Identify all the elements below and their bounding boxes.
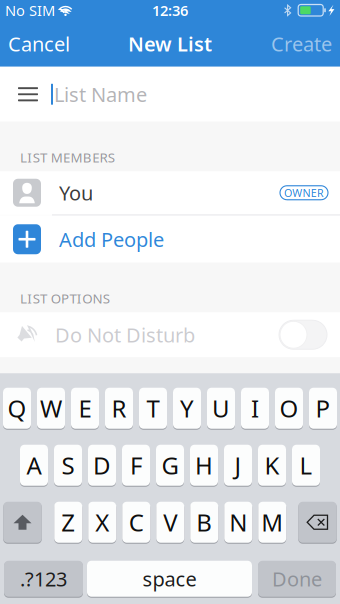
staticText: F [130, 449, 142, 481]
staticText: Done [272, 565, 322, 592]
button[interactable]: Shift [3, 501, 42, 543]
staticText: N [229, 506, 247, 538]
staticText: 12:36 [152, 0, 188, 20]
staticText: H [195, 449, 213, 481]
button[interactable]: J [224, 444, 252, 486]
button[interactable]: E [71, 387, 99, 429]
staticText: K [264, 449, 279, 481]
button[interactable]: G [156, 444, 184, 486]
button[interactable]: Create [263, 21, 340, 67]
button[interactable]: O [275, 387, 303, 429]
staticText: U [212, 392, 230, 424]
staticText: You [59, 179, 93, 206]
staticText: space [142, 565, 196, 592]
staticText: List Name [54, 81, 147, 108]
staticText: W [40, 392, 62, 424]
button[interactable]: U [207, 387, 235, 429]
button[interactable]: H [190, 444, 218, 486]
staticText: Q [7, 392, 26, 424]
staticText: OWNER [284, 186, 324, 200]
button[interactable]: X [88, 501, 116, 543]
staticText: B [196, 506, 212, 538]
staticText: X [95, 506, 109, 538]
button[interactable]: Q [3, 387, 31, 429]
staticText: T [146, 392, 159, 424]
staticText: LIST MEMBERS [20, 148, 115, 166]
staticText: M [261, 506, 283, 538]
staticText: V [163, 506, 177, 538]
button[interactable]: T [139, 387, 167, 429]
staticText: J [234, 449, 241, 481]
staticText: Do Not Disturb [55, 321, 195, 348]
button[interactable]: B [190, 501, 218, 543]
button[interactable]: Y [173, 387, 201, 429]
staticText: C [129, 506, 144, 538]
staticText: Z [61, 506, 75, 538]
staticText: Y [180, 392, 194, 424]
button[interactable]: You [0, 171, 340, 214]
staticText: E [78, 392, 91, 424]
staticText: A [26, 449, 41, 481]
staticText: R [111, 392, 126, 424]
staticText: O [279, 392, 298, 424]
staticText: Add People [59, 226, 164, 253]
button[interactable]: D [88, 444, 116, 486]
button[interactable]: L [292, 444, 320, 486]
staticText: Cancel [8, 30, 70, 57]
button[interactable]: R [105, 387, 133, 429]
button[interactable]: S [54, 444, 82, 486]
staticText: D [93, 449, 111, 481]
staticText: LIST OPTIONS [20, 289, 110, 307]
button[interactable]: N [224, 501, 252, 543]
button[interactable]: .?123 [4, 560, 83, 597]
button[interactable]: space [87, 560, 252, 597]
button[interactable]: W [37, 387, 65, 429]
staticText: No SIM [5, 0, 55, 20]
button[interactable]: I [241, 387, 269, 429]
staticText: .?123 [20, 565, 67, 592]
button[interactable]: P [309, 387, 337, 429]
staticText: New List [128, 30, 212, 57]
button[interactable]: F [122, 444, 150, 486]
button[interactable]: V [156, 501, 184, 543]
button[interactable]: M [258, 501, 286, 543]
button[interactable]: Add People [0, 216, 340, 263]
staticText: Create [271, 30, 332, 57]
staticText: S [61, 449, 74, 481]
button[interactable]: Cancel [0, 21, 78, 67]
button[interactable]: K [258, 444, 286, 486]
button[interactable]: A [20, 444, 48, 486]
button[interactable]: C [122, 501, 150, 543]
button[interactable]: Done [258, 560, 336, 597]
staticText: P [315, 392, 330, 424]
staticText: G [161, 449, 178, 481]
button[interactable]: Delete [298, 501, 337, 543]
staticText: L [299, 449, 312, 481]
button[interactable]: Z [54, 501, 82, 543]
staticText: I [251, 392, 259, 424]
